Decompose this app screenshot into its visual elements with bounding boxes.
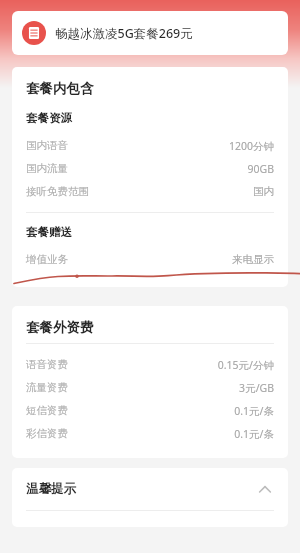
staticText: 国内: [253, 185, 274, 198]
staticText: 0.15元/分钟: [217, 358, 274, 372]
staticText: 流量资费: [26, 381, 68, 394]
staticText: 0.1元/条: [234, 404, 274, 418]
button[interactable]: 接听免费范围: [12, 180, 288, 203]
staticText: 语音资费: [26, 358, 68, 371]
button[interactable]: 增值业务: [12, 248, 288, 271]
button[interactable]: 短信资费: [12, 399, 288, 422]
staticText: 温馨提示: [26, 481, 76, 497]
button[interactable]: 流量资费: [12, 376, 288, 399]
button[interactable]: 畅越冰激凌5G套餐269元: [12, 11, 288, 55]
button[interactable]: 语音资费: [12, 353, 288, 376]
staticText: 来电显示: [232, 253, 274, 266]
staticText: 彩信资费: [26, 427, 68, 440]
staticText: 套餐赠送: [26, 225, 72, 239]
staticText: 1200分钟: [228, 139, 274, 153]
button[interactable]: 国内语音: [12, 134, 288, 157]
staticText: 套餐外资费: [26, 319, 94, 336]
staticText: 畅越冰激凌5G套餐269元: [55, 25, 193, 42]
staticText: 短信资费: [26, 404, 68, 417]
staticText: 国内语音: [26, 139, 68, 152]
staticText: 3元/GB: [239, 381, 274, 395]
button[interactable]: 国内流量: [12, 157, 288, 180]
staticText: 套餐资源: [26, 111, 72, 125]
staticText: 国内流量: [26, 162, 68, 175]
staticText: 接听免费范围: [26, 185, 89, 198]
staticText: 增值业务: [26, 253, 68, 266]
staticText: 90GB: [247, 162, 274, 176]
staticText: 0.1元/条: [234, 427, 274, 441]
button[interactable]: 彩信资费: [12, 422, 288, 445]
button[interactable]: 温馨提示: [12, 468, 288, 510]
staticText: 套餐内包含: [26, 80, 94, 97]
other: Collapse: [256, 480, 274, 498]
